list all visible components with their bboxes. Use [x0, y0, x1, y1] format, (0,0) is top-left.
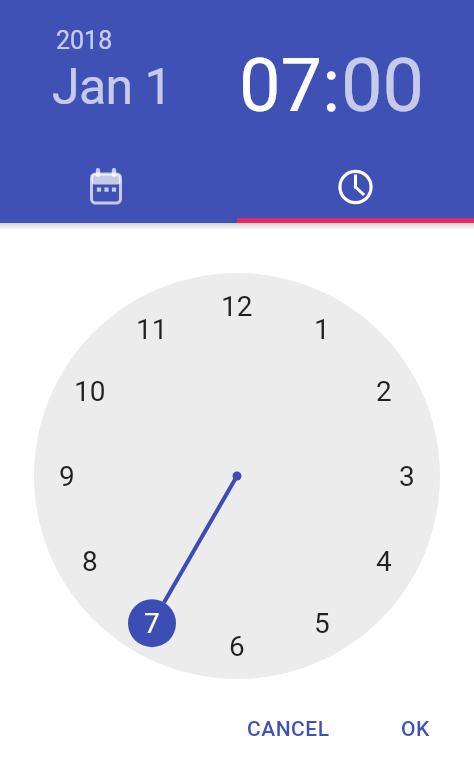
- staticText: 00: [341, 42, 425, 129]
- staticText: 9: [59, 460, 75, 493]
- staticText: 7: [144, 607, 160, 640]
- button[interactable]: CANCEL: [238, 705, 338, 753]
- staticText: 4: [376, 545, 392, 578]
- staticText: OK: [401, 717, 430, 742]
- button[interactable]: [237, 150, 474, 223]
- button[interactable]: [34, 273, 440, 679]
- staticText: 11: [136, 313, 168, 346]
- staticText: 10: [74, 375, 106, 408]
- staticText: 3: [399, 460, 415, 493]
- staticText: 5: [314, 607, 330, 640]
- staticText: 2018: [56, 26, 113, 55]
- staticText: 07:: [239, 42, 341, 129]
- staticText: 12: [221, 290, 253, 323]
- staticText: 8: [82, 545, 98, 578]
- staticText: 1: [314, 313, 330, 346]
- button[interactable]: [0, 150, 237, 223]
- staticText: CANCEL: [247, 717, 330, 742]
- staticText: 2: [376, 375, 392, 408]
- staticText: Jan 1: [52, 58, 172, 117]
- staticText: 6: [229, 630, 245, 663]
- button[interactable]: OK: [365, 705, 465, 753]
